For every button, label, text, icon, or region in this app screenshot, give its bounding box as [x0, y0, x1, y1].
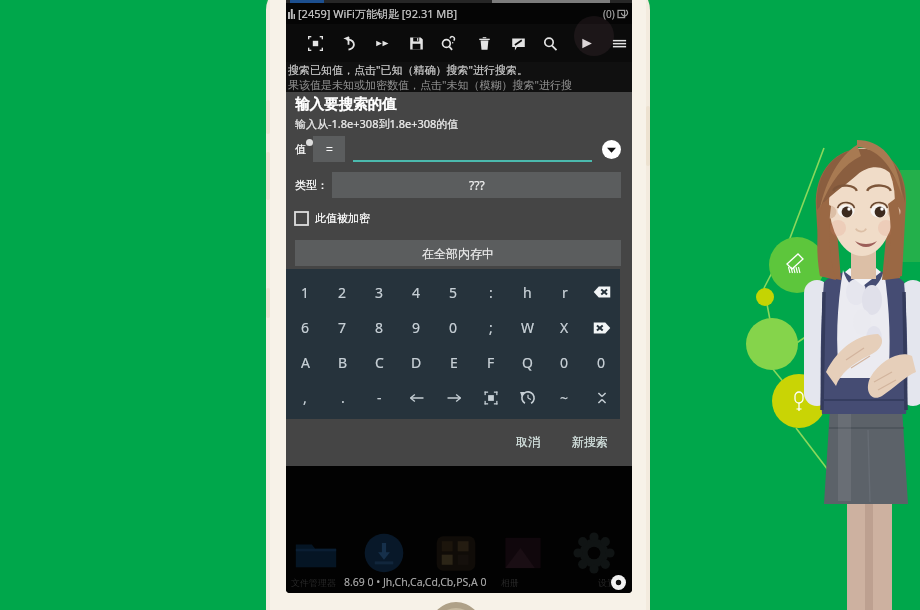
button[interactable]: Undo — [333, 28, 363, 58]
staticText: - — [377, 388, 382, 407]
button[interactable]: Menu — [604, 28, 632, 58]
button[interactable]: h — [509, 274, 546, 310]
staticText: 8 — [375, 318, 384, 337]
staticText: 1 — [301, 283, 310, 302]
staticText: 0 — [449, 318, 458, 337]
button[interactable]: r — [546, 274, 583, 310]
staticText: 8.69 0 • Jh,Ch,Ca,Cd,Cb,PS,A 0 — [344, 575, 487, 589]
button[interactable]: Search — [535, 28, 565, 58]
staticText: (0) — [603, 7, 615, 21]
staticText: ; — [489, 318, 493, 337]
staticText: 输入要搜索的值 — [295, 95, 397, 113]
staticText: 文件管理器 — [291, 577, 336, 588]
button[interactable]: left — [398, 380, 435, 415]
button[interactable]: W — [509, 310, 546, 345]
button[interactable]: 在全部内存中 — [295, 240, 621, 266]
button[interactable]: right — [435, 380, 472, 415]
button[interactable]: 取消 — [510, 430, 546, 453]
button[interactable]: 2 — [324, 274, 361, 310]
button[interactable]: 0 — [435, 310, 472, 345]
staticText: C — [375, 353, 384, 372]
button[interactable] — [353, 136, 592, 162]
button[interactable]: ; — [472, 310, 509, 345]
button[interactable]: E — [435, 345, 472, 380]
staticText: 相册 — [501, 577, 519, 588]
button[interactable]: . — [324, 380, 361, 415]
button[interactable]: 8 — [361, 310, 398, 345]
staticText: r — [562, 283, 568, 302]
button[interactable]: Downloads — [363, 532, 405, 574]
button[interactable]: Play — [571, 28, 601, 58]
staticText: 0 — [560, 353, 569, 372]
staticText: 6 — [301, 318, 310, 337]
button[interactable]: = — [313, 136, 345, 162]
staticText: 搜索已知值，点击"已知（精确）搜索"进行搜索。 — [288, 62, 528, 77]
button[interactable]: bs — [583, 274, 620, 310]
staticText: : — [489, 283, 493, 302]
button[interactable]: Open list — [602, 140, 621, 159]
staticText: 5 — [449, 283, 458, 302]
button[interactable]: Delete — [469, 28, 499, 58]
button[interactable]: : — [472, 274, 509, 310]
button[interactable]: 0 — [546, 345, 583, 380]
staticText: 2 — [338, 283, 347, 302]
staticText: E — [450, 353, 458, 372]
staticText: 4 — [412, 283, 421, 302]
staticText: A — [301, 353, 310, 372]
button[interactable]: C — [361, 345, 398, 380]
button[interactable]: Apps — [435, 532, 477, 574]
button[interactable]: F — [472, 345, 509, 380]
button[interactable]: , — [286, 380, 324, 415]
staticText: 此值被加密 — [315, 211, 370, 225]
button[interactable]: - — [361, 380, 398, 415]
button[interactable]: 新搜索 — [566, 430, 614, 453]
button[interactable]: 1 — [286, 274, 324, 310]
staticText: 0 — [597, 353, 606, 372]
staticText: 3 — [375, 283, 384, 302]
staticText: 值 — [295, 142, 306, 156]
staticText: W — [521, 318, 535, 337]
button[interactable]: File manager — [295, 532, 337, 574]
staticText: h — [523, 283, 532, 302]
staticText: [2459] WiFi万能钥匙 [92.31 MB] — [298, 6, 458, 21]
button[interactable]: Settings — [573, 532, 615, 574]
staticText: 取消 — [516, 434, 540, 449]
button[interactable]: Select — [300, 28, 330, 58]
button[interactable]: 3 — [361, 274, 398, 310]
button[interactable]: sel — [472, 380, 509, 415]
staticText: 输入从-1.8e+308到1.8e+308的值 — [295, 116, 459, 131]
button[interactable]: 9 — [398, 310, 435, 345]
button[interactable]: Floating assistive button — [574, 16, 614, 56]
button[interactable]: 5 — [435, 274, 472, 310]
button[interactable]: Save — [401, 28, 431, 58]
staticText: X — [560, 318, 569, 337]
button[interactable]: X — [546, 310, 583, 345]
button[interactable]: 0 — [583, 345, 620, 380]
button[interactable]: 7 — [324, 310, 361, 345]
button[interactable]: 此值被加密 — [295, 209, 370, 227]
button[interactable]: Search unknown — [433, 28, 463, 58]
staticText: D — [411, 353, 422, 372]
button[interactable]: Edit — [503, 28, 533, 58]
staticText: 果该值是未知或加密数值，点击"未知（模糊）搜索"进行搜 — [288, 77, 572, 92]
staticText: . — [341, 388, 345, 407]
button[interactable]: ??? — [332, 172, 621, 198]
button[interactable]: collapse — [583, 380, 620, 415]
button[interactable]: Visibility — [611, 575, 626, 590]
staticText: , — [303, 388, 307, 407]
staticText: ??? — [469, 177, 485, 193]
button[interactable]: del — [583, 310, 620, 345]
button[interactable]: Forward — [367, 28, 397, 58]
button[interactable]: 6 — [286, 310, 324, 345]
button[interactable]: ~ — [546, 380, 583, 415]
button[interactable]: B — [324, 345, 361, 380]
staticText: 9 — [412, 318, 421, 337]
staticText: 类型： — [295, 178, 328, 192]
button[interactable]: A — [286, 345, 324, 380]
button[interactable]: D — [398, 345, 435, 380]
button[interactable]: Gallery — [502, 532, 544, 574]
button[interactable]: hist — [509, 380, 546, 415]
button[interactable]: 4 — [398, 274, 435, 310]
button[interactable]: Q — [509, 345, 546, 380]
staticText: 设置 — [598, 577, 616, 588]
